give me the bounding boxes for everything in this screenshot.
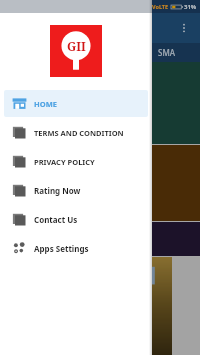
staticText: Apps Settings [34,243,89,254]
button[interactable]: PRIVACY POLICY [4,148,148,175]
button[interactable]: HOME [4,90,148,117]
staticText: 4G [143,3,151,10]
button[interactable]: NEWS [0,43,66,62]
button[interactable]: SMART [66,43,133,62]
staticText: WEST INDIES NEWS [4,91,60,115]
staticText: NEWS [4,177,30,189]
button[interactable] [0,222,200,256]
button[interactable]: Contact Us [4,206,148,233]
staticText: TERMS AND CONDITION [34,128,124,138]
staticText: SMA [158,47,175,58]
staticText: HOME [34,99,57,109]
staticText: Rating Now [34,185,81,196]
button[interactable]: TERMS AND CONDITION [4,119,148,146]
button[interactable]: WEST INDIES NEWS [0,62,200,144]
staticText: GII APPS [10,21,56,36]
staticText: PRIVACY POLICY [34,157,95,167]
staticText: GII [67,38,86,54]
staticText: VoLTE [152,3,169,10]
staticText: 31% [184,3,197,11]
button[interactable]: Apps Settings [4,235,148,262]
button[interactable] [0,257,200,355]
staticText: SMART [86,47,113,58]
button[interactable]: SMA [133,43,200,62]
button[interactable]: Rating Now [4,177,148,204]
button[interactable]: NEWS [0,145,200,221]
staticText: Contact Us [34,214,78,225]
button[interactable]: More options [174,18,194,38]
